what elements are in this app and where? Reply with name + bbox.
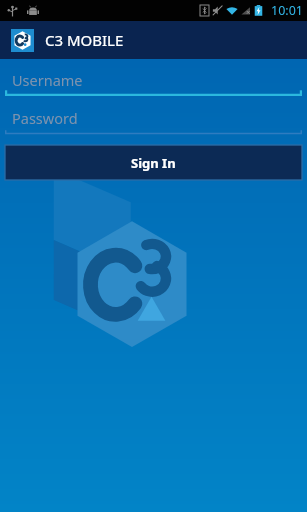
staticText: Sign In xyxy=(131,154,176,172)
staticText: C3 MOBILE xyxy=(45,30,124,50)
staticText: Password xyxy=(12,108,78,128)
button[interactable]: Username xyxy=(5,68,302,97)
other: C3 Mobile logo xyxy=(11,29,34,52)
staticText: Username xyxy=(12,70,83,90)
staticText: 10:01 xyxy=(271,2,303,19)
button[interactable]: Password xyxy=(5,106,302,135)
button[interactable]: Sign In xyxy=(5,145,302,180)
